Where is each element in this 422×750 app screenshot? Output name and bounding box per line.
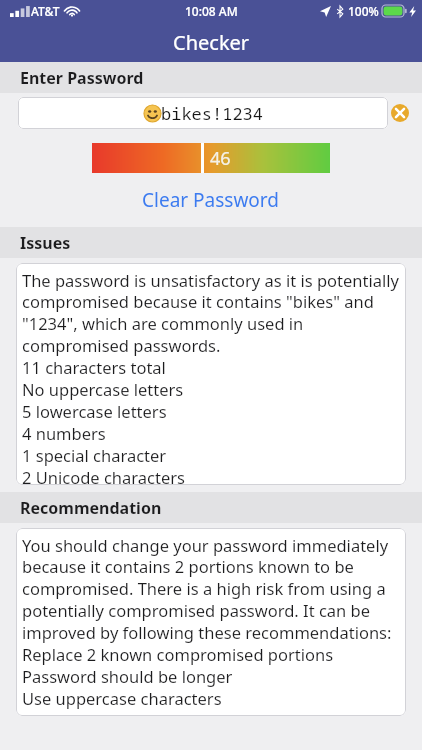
button[interactable]: The password is unsatisfactory as it is … bbox=[16, 263, 406, 485]
staticText: Clear Password bbox=[142, 187, 280, 213]
staticText: Enter Password bbox=[20, 67, 144, 89]
staticText: Issues bbox=[20, 232, 71, 254]
staticText: You should change your password immediat… bbox=[22, 534, 392, 710]
staticText: Recommendation bbox=[20, 497, 162, 519]
staticText: bikes!1234 bbox=[161, 102, 263, 125]
button[interactable]: bikes!1234 bbox=[18, 97, 388, 129]
staticText: AT&T bbox=[31, 3, 60, 19]
staticText: The password is unsatisfactory as it is … bbox=[22, 269, 399, 485]
staticText: 100% bbox=[348, 3, 379, 19]
button[interactable]: You should change your password immediat… bbox=[16, 528, 406, 716]
button[interactable]: Clear Password bbox=[142, 187, 280, 213]
staticText: Checker bbox=[173, 29, 250, 56]
button[interactable]: Clear text bbox=[388, 101, 412, 125]
staticText: 10:08 AM bbox=[185, 3, 238, 19]
staticText: 46 bbox=[210, 146, 231, 171]
